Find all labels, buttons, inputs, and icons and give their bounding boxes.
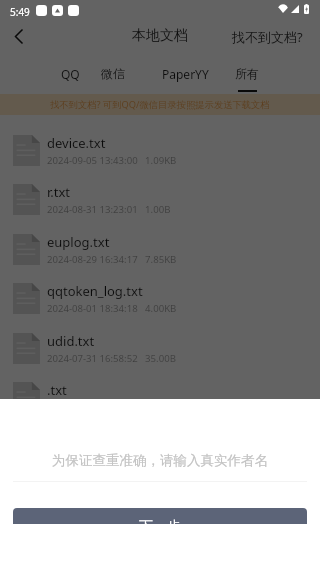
- button[interactable]: Back: [4, 22, 33, 51]
- button[interactable]: euplog.txt: [0, 224, 320, 274]
- button[interactable]: udid.txt: [0, 323, 320, 373]
- staticText: PaperYY: [162, 66, 209, 82]
- staticText: 为保证查重准确，请输入真实作者名: [0, 452, 320, 469]
- staticText: .txt: [47, 381, 67, 399]
- button[interactable]: PaperYY: [155, 66, 215, 96]
- staticText: 2024-09-05 13:43:00 1.09KB: [47, 154, 177, 167]
- staticText: 所有: [235, 66, 259, 81]
- staticText: 2024-07-31 16:58:52 35.00B: [47, 352, 176, 365]
- button[interactable]: device.txt: [0, 125, 320, 175]
- staticText: 下一步: [139, 518, 181, 536]
- staticText: QQ: [61, 66, 80, 82]
- button[interactable]: QQ: [40, 66, 100, 96]
- staticText: 本地文档: [0, 27, 320, 45]
- staticText: udid.txt: [47, 332, 95, 350]
- button[interactable]: 微信: [83, 66, 143, 96]
- staticText: euplog.txt: [47, 233, 110, 251]
- staticText: 2024-08-01 18:34:18 4.00KB: [47, 302, 177, 315]
- staticText: r.txt: [47, 183, 71, 201]
- staticText: 2024-08-29 16:34:17 7.85KB: [47, 253, 177, 266]
- button[interactable]: 下一步: [13, 508, 307, 545]
- button[interactable]: .txt: [0, 372, 320, 422]
- button[interactable]: r.txt: [0, 174, 320, 224]
- staticText: 5:49: [10, 5, 30, 19]
- button[interactable]: 找不到文档?: [232, 28, 303, 46]
- staticText: qqtoken_log.txt: [47, 282, 143, 300]
- staticText: 2024-08-31 13:23:01 1.00B: [47, 203, 171, 216]
- staticText: device.txt: [47, 134, 106, 152]
- staticText: 微信: [101, 66, 125, 81]
- staticText: 找不到文档? 可到QQ/微信目录按照提示发送下载文档: [50, 98, 270, 111]
- button[interactable]: qqtoken_log.txt: [0, 273, 320, 323]
- button[interactable]: 所有: [217, 66, 277, 96]
